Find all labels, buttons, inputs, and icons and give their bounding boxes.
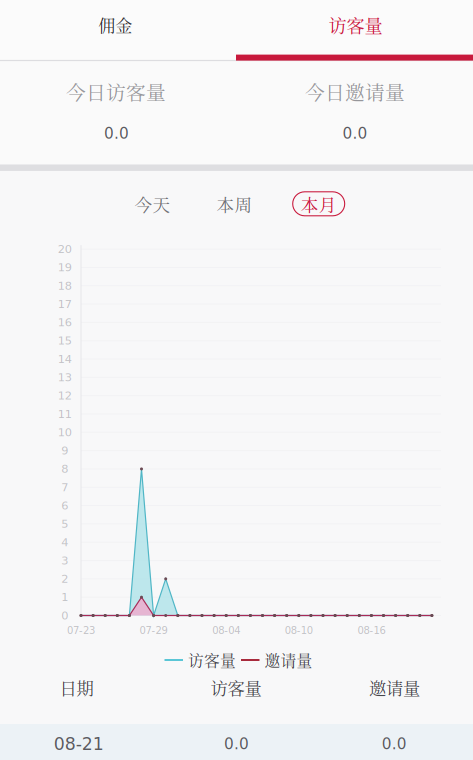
staticText: 14 bbox=[58, 352, 72, 366]
staticText: 今天 bbox=[135, 191, 171, 216]
staticText: 0.0 bbox=[342, 125, 367, 142]
button[interactable]: 本周 bbox=[206, 191, 262, 217]
button[interactable]: 本月 bbox=[293, 192, 345, 216]
staticText: 0.0 bbox=[104, 125, 129, 142]
staticText: 13 bbox=[58, 371, 72, 384]
staticText: 3 bbox=[61, 554, 68, 567]
staticText: 邀请量 bbox=[369, 675, 420, 700]
staticText: 0.0 bbox=[382, 735, 407, 753]
staticText: 访客量 bbox=[210, 675, 261, 700]
staticText: 本月 bbox=[301, 191, 337, 216]
staticText: 18 bbox=[58, 279, 72, 292]
staticText: 今日访客量 bbox=[66, 77, 166, 106]
button[interactable]: 佣金 bbox=[0, 0, 233, 55]
staticText: 08-04 bbox=[212, 625, 240, 636]
staticText: 11 bbox=[58, 407, 72, 421]
staticText: 07-23 bbox=[67, 625, 95, 636]
staticText: 08-16 bbox=[357, 625, 385, 636]
staticText: 本周 bbox=[216, 191, 252, 216]
staticText: 7 bbox=[61, 481, 68, 494]
staticText: 5 bbox=[61, 517, 68, 530]
staticText: 日期 bbox=[59, 675, 93, 700]
staticText: 8 bbox=[61, 462, 68, 475]
staticText: 15 bbox=[58, 334, 72, 347]
staticText: 邀请量 bbox=[264, 649, 312, 671]
staticText: 0.0 bbox=[224, 735, 249, 753]
staticText: 访客量 bbox=[188, 649, 236, 671]
button[interactable]: 08-21 bbox=[0, 724, 473, 760]
staticText: 9 bbox=[61, 444, 68, 457]
button[interactable]: 访客量 bbox=[237, 0, 473, 55]
staticText: 08-10 bbox=[285, 625, 313, 636]
staticText: 17 bbox=[58, 297, 72, 311]
staticText: 0 bbox=[61, 609, 68, 622]
staticText: 08-21 bbox=[54, 734, 104, 754]
staticText: 10 bbox=[58, 426, 72, 439]
staticText: 2 bbox=[61, 572, 68, 585]
staticText: 4 bbox=[61, 536, 68, 549]
staticText: 19 bbox=[58, 261, 72, 274]
staticText: 16 bbox=[58, 316, 72, 329]
staticText: 佣金 bbox=[98, 13, 132, 37]
staticText: 20 bbox=[58, 242, 72, 256]
staticText: 12 bbox=[58, 389, 72, 402]
staticText: 访客量 bbox=[329, 12, 383, 38]
staticText: 今日邀请量 bbox=[305, 77, 405, 106]
button[interactable]: 今天 bbox=[125, 191, 181, 217]
staticText: 6 bbox=[61, 499, 68, 512]
staticText: 07-29 bbox=[140, 625, 168, 636]
staticText: 1 bbox=[61, 591, 68, 604]
